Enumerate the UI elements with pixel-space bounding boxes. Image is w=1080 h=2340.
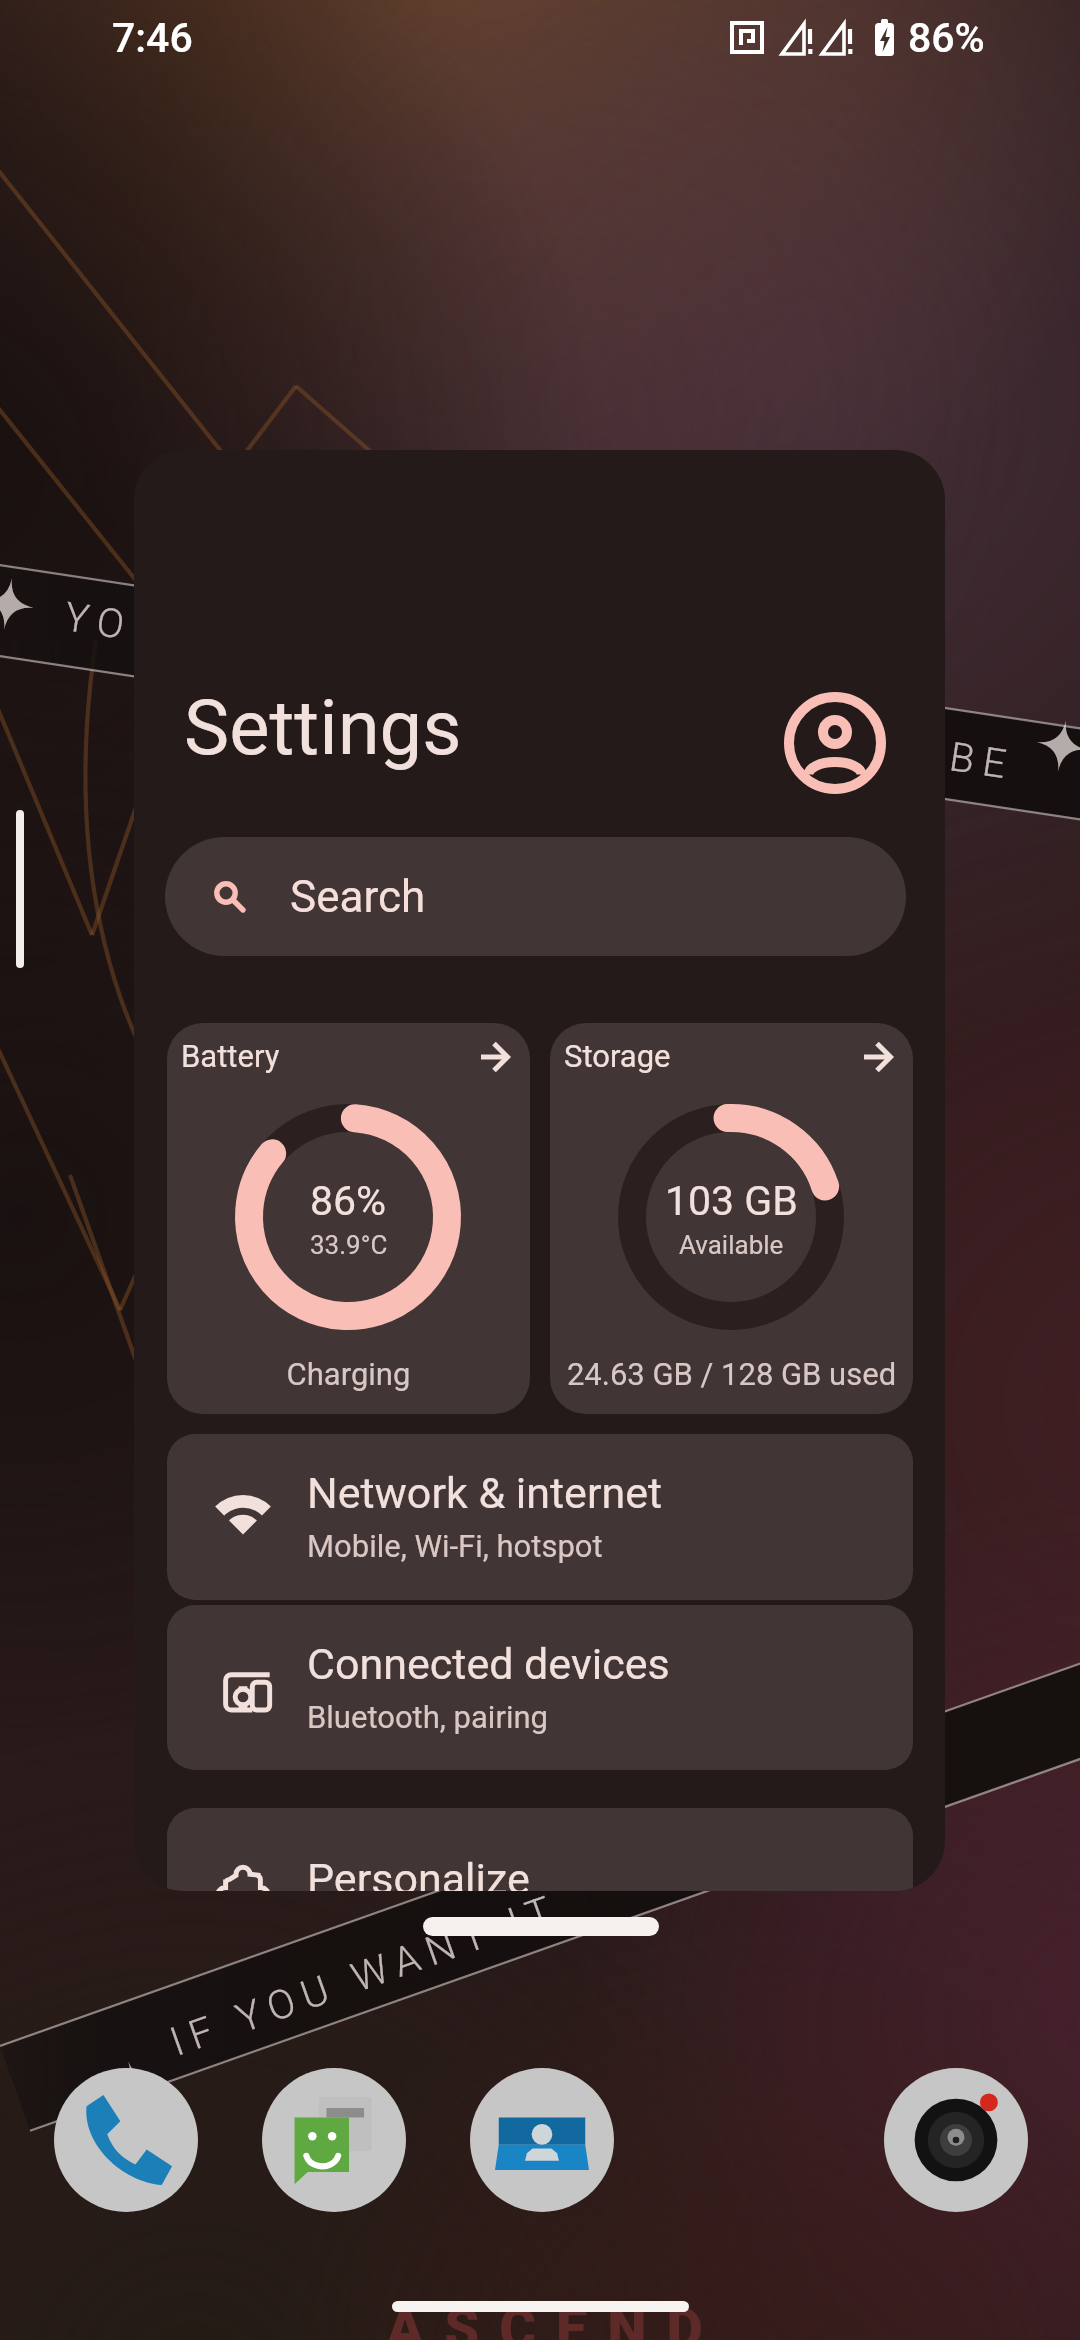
staticText: BE xyxy=(946,733,1019,790)
button[interactable]: Personalize xyxy=(167,1808,913,1891)
staticText: Available xyxy=(679,1230,784,1260)
staticText: 7:46 xyxy=(112,14,193,62)
button[interactable]: Contacts xyxy=(470,2068,614,2212)
staticText: Battery xyxy=(181,1038,280,1074)
staticText: Bluetooth, pairing xyxy=(307,1699,548,1735)
button[interactable]: Search xyxy=(165,837,906,956)
button[interactable]: Account xyxy=(778,686,892,800)
staticText: Mobile, Wi-Fi, hotspot xyxy=(307,1528,603,1564)
button[interactable]: Storage xyxy=(550,1023,913,1414)
staticText: Personalize xyxy=(307,1854,530,1891)
staticText: Connected devices xyxy=(307,1639,670,1689)
staticText: Network & internet xyxy=(307,1468,663,1518)
staticText: 33.9°C xyxy=(310,1230,388,1260)
staticText: IF YOU WANT IT xyxy=(164,1884,567,2066)
staticText: Search xyxy=(290,871,426,923)
staticText: 86% xyxy=(310,1177,387,1225)
staticText: 86% xyxy=(908,14,985,62)
staticText: Charging xyxy=(167,1356,530,1392)
button[interactable]: Camera xyxy=(884,2068,1028,2212)
staticText: ASCEND xyxy=(386,2296,723,2340)
button[interactable]: Connected devices xyxy=(167,1605,913,1770)
button[interactable]: Phone xyxy=(54,2068,198,2212)
staticText: 103 GB xyxy=(665,1177,798,1225)
staticText: Storage xyxy=(564,1038,671,1074)
button[interactable]: Network & internet xyxy=(167,1434,913,1600)
button[interactable]: Battery xyxy=(167,1023,530,1414)
button[interactable]: Messages xyxy=(262,2068,406,2212)
staticText: Settings xyxy=(184,683,462,772)
staticText: 24.63 GB / 128 GB used xyxy=(550,1356,913,1392)
staticText: YOU xyxy=(61,593,171,655)
